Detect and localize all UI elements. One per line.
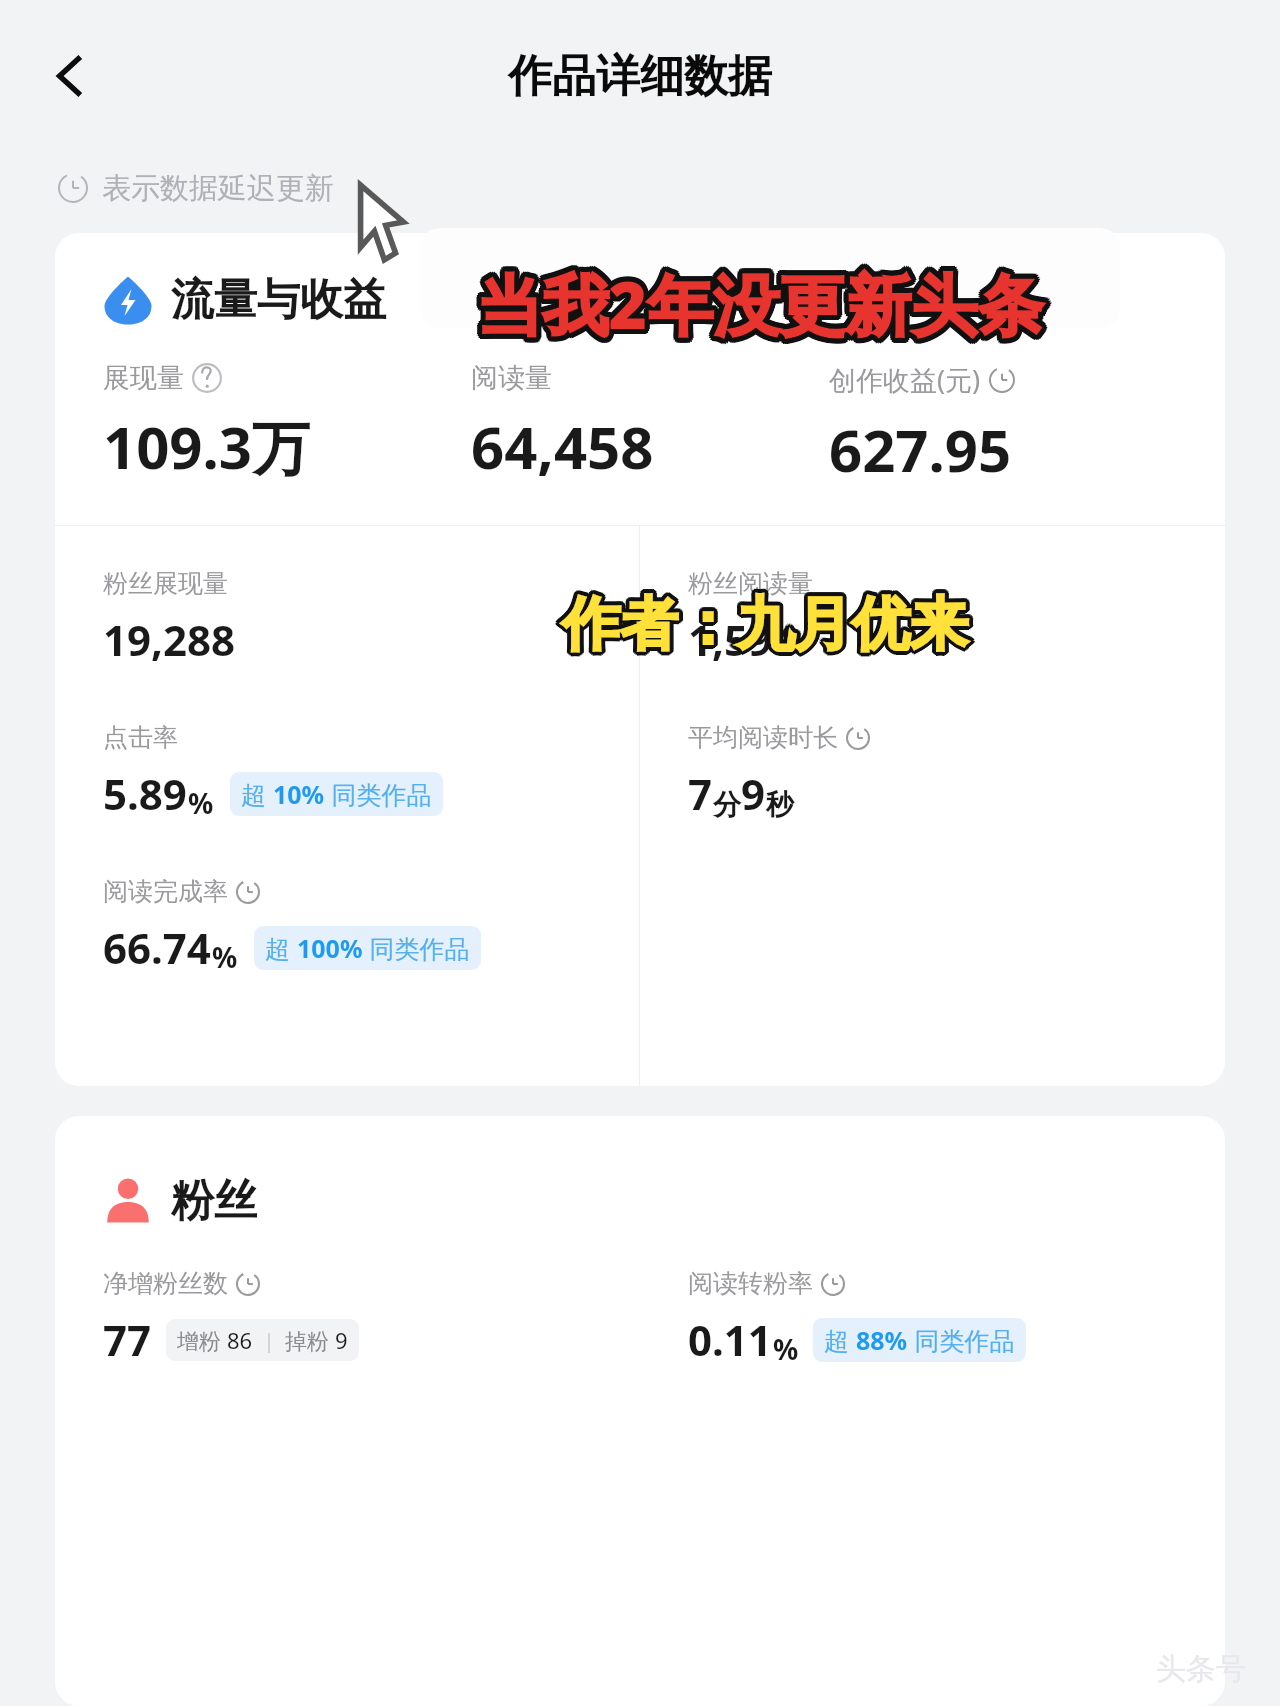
staticText: 9 <box>741 765 766 822</box>
staticText: 超 <box>241 777 273 811</box>
staticText: 同类作品 <box>363 931 470 965</box>
button[interactable]: 返回 <box>34 40 106 112</box>
staticText: 作品详细数据 <box>508 49 772 104</box>
staticText: 64,458 <box>471 407 654 486</box>
staticText: 超 <box>824 1323 856 1357</box>
staticText: 净增粉丝数 <box>103 1268 228 1299</box>
staticText: 增粉 <box>177 1325 227 1355</box>
staticText: 平均阅读时长 <box>688 722 838 753</box>
staticText: 分 <box>713 787 741 822</box>
staticText: 流量与收益 <box>171 273 386 327</box>
staticText: % <box>188 784 214 822</box>
staticText: 头条号 <box>1156 1650 1246 1688</box>
staticText: 88% <box>856 1323 908 1357</box>
staticText: 粉丝展现量 <box>103 568 228 599</box>
staticText: 109.3万 <box>103 407 311 486</box>
staticText: 同类作品 <box>325 777 432 811</box>
button[interactable]: 超 <box>813 1318 1026 1362</box>
staticText: 10% <box>273 777 325 811</box>
staticText: 9 <box>335 1325 348 1355</box>
staticText: 超 <box>265 931 297 965</box>
staticText: 阅读完成率 <box>103 876 228 907</box>
staticText: 秒 <box>766 787 794 822</box>
staticText: 展现量 <box>103 361 184 395</box>
staticText: 创作收益(元) <box>829 361 981 398</box>
staticText: 阅读转粉率 <box>688 1268 813 1299</box>
button[interactable]: 超 <box>254 926 481 970</box>
staticText: % <box>773 1330 799 1368</box>
staticText: 5.89 <box>103 765 187 822</box>
staticText: 86 <box>227 1325 253 1355</box>
staticText: 0.11 <box>688 1311 772 1368</box>
staticText: 66.74 <box>103 919 211 976</box>
staticText: 627.95 <box>829 410 1012 489</box>
staticText: 100% <box>297 931 363 965</box>
staticText: 掉粉 <box>285 1325 335 1355</box>
staticText: 1,594 <box>688 611 797 668</box>
staticText: 19,288 <box>103 611 236 668</box>
staticText: 粉丝阅读量 <box>688 568 813 599</box>
staticText: 同类作品 <box>908 1323 1015 1357</box>
staticText: % <box>212 938 238 976</box>
staticText: 粉丝 <box>171 1174 257 1228</box>
staticText: 阅读量 <box>471 361 552 395</box>
staticText: 点击率 <box>103 722 178 753</box>
staticText: 表示数据延迟更新 <box>102 170 334 207</box>
staticText: | <box>253 1327 285 1354</box>
staticText: 7 <box>688 765 713 822</box>
button[interactable]: 超 <box>230 772 443 816</box>
button[interactable]: 增粉 <box>166 1319 359 1361</box>
staticText: 77 <box>103 1311 152 1368</box>
